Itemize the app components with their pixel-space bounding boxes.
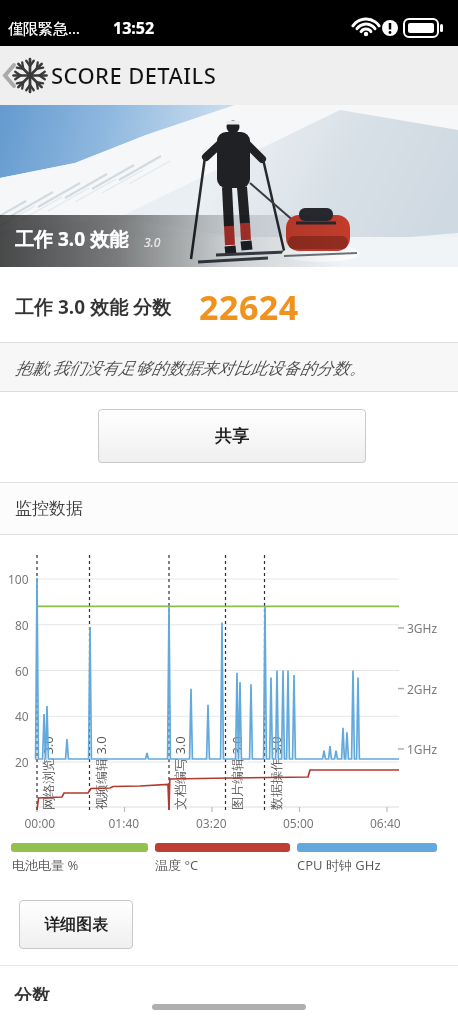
button[interactable]: 详细图表 (19, 900, 133, 949)
staticText: CPU 时钟 GHz (297, 856, 381, 874)
staticText: 温度 °C (155, 856, 199, 874)
staticText: 工作 3.0 效能 (15, 226, 128, 252)
button[interactable]: SCORE DETAILS (51, 60, 217, 90)
staticText: 分数 (14, 985, 50, 1001)
staticText: 监控数据 (15, 498, 83, 519)
staticText: 电池电量 % (12, 856, 79, 874)
staticText: 3.0 (144, 234, 161, 250)
staticText: 详细图表 (44, 915, 108, 935)
staticText: 僅限緊急… (8, 18, 80, 38)
staticText: 抱歉,我们没有足够的数据来对比此设备的分数。 (15, 356, 366, 379)
button[interactable]: 共享 (98, 409, 366, 463)
staticText: 工作 3.0 效能 分数 (15, 294, 171, 320)
staticText: 22624 (199, 284, 299, 330)
staticText: 共享 (215, 426, 249, 447)
staticText: 13:52 (113, 17, 155, 39)
